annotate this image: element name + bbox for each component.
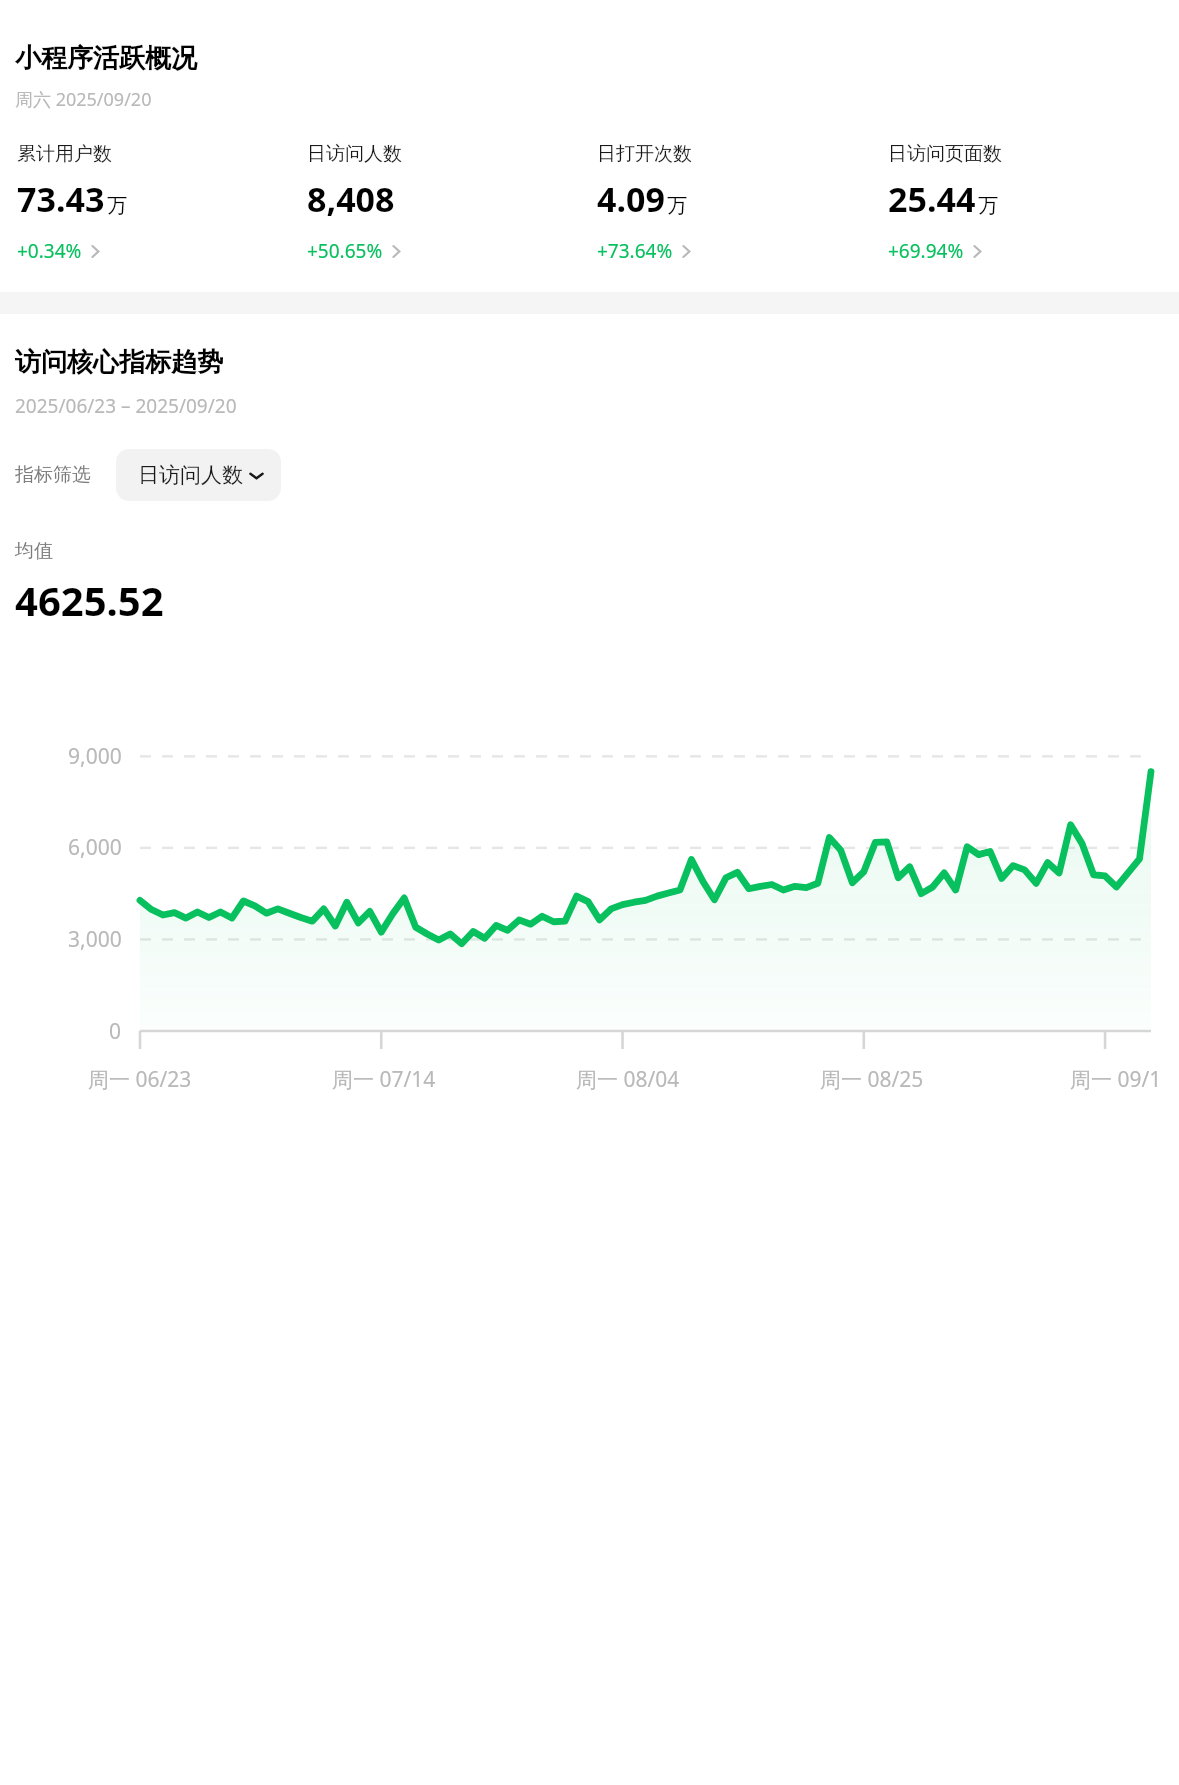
staticText: 8,408 xyxy=(307,176,395,222)
staticText: +0.34% xyxy=(17,238,82,264)
staticText: 9,000 xyxy=(68,742,122,771)
button[interactable]: 日访问人数 xyxy=(116,449,281,501)
button[interactable]: 日访问页面数 xyxy=(884,142,1175,264)
staticText: 周一 07/14 xyxy=(332,1065,436,1094)
staticText: 日打开次数 xyxy=(597,142,692,166)
staticText: 周一 08/25 xyxy=(820,1065,924,1094)
staticText: +50.65% xyxy=(307,238,383,264)
staticText: 日访问人数 xyxy=(138,462,243,488)
staticText: 日访问页面数 xyxy=(888,142,1002,166)
staticText: 4.09 xyxy=(597,176,665,222)
staticText: 周一 09/1 xyxy=(1070,1065,1162,1094)
staticText: 6,000 xyxy=(68,833,122,862)
staticText: +69.94% xyxy=(888,238,964,264)
staticText: 访问核心指标趋势 xyxy=(15,346,223,379)
staticText: 日访问人数 xyxy=(307,142,402,166)
staticText: 4625.52 xyxy=(15,573,164,627)
staticText: 周六 2025/09/20 xyxy=(15,87,152,112)
staticText: 周一 08/04 xyxy=(576,1065,680,1094)
button[interactable]: 日打开次数 xyxy=(593,142,884,264)
staticText: 3,000 xyxy=(68,925,122,954)
staticText: 万 xyxy=(107,193,127,218)
staticText: +73.64% xyxy=(597,238,673,264)
staticText: 指标筛选 xyxy=(15,463,91,487)
staticText: 周一 06/23 xyxy=(88,1065,192,1094)
staticText: 均值 xyxy=(15,539,53,563)
staticText: 73.43 xyxy=(17,176,105,222)
staticText: 2025/06/23 – 2025/09/20 xyxy=(15,393,237,419)
staticText: 万 xyxy=(978,193,998,218)
staticText: 累计用户数 xyxy=(17,142,112,166)
button[interactable]: 日访问人数 xyxy=(303,142,593,264)
staticText: 0 xyxy=(109,1017,122,1046)
staticText: 小程序活跃概况 xyxy=(15,42,197,75)
staticText: 25.44 xyxy=(888,176,976,222)
staticText: 万 xyxy=(667,193,687,218)
button[interactable]: 累计用户数 xyxy=(13,142,303,264)
